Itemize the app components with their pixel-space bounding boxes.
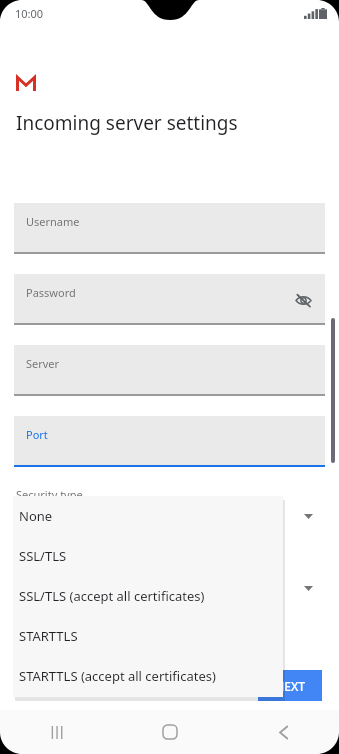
button[interactable]: Show password: [290, 287, 316, 313]
button[interactable]: Open dropdown: [300, 582, 316, 594]
button[interactable]: Open dropdown: [300, 510, 316, 522]
staticText: NEXT: [275, 678, 306, 694]
button[interactable]: Back: [261, 710, 305, 754]
button[interactable]: STARTTLS: [13, 616, 283, 656]
staticText: SSL/TLS (accept all certificates): [19, 587, 205, 605]
button[interactable]: Server: [14, 345, 325, 396]
button[interactable]: Username: [14, 203, 325, 254]
button[interactable]: Password: [14, 274, 325, 325]
button[interactable]: Port: [14, 416, 325, 467]
staticText: STARTTLS: [19, 627, 78, 645]
button[interactable]: Recent apps: [35, 710, 79, 754]
staticText: Port: [26, 427, 48, 442]
staticText: SSL/TLS: [19, 547, 67, 565]
staticText: STARTTLS (accept all certificates): [19, 667, 216, 685]
staticText: Security type: [16, 487, 83, 502]
staticText: Server: [26, 356, 60, 371]
staticText: Password: [26, 285, 76, 300]
button[interactable]: NEXT: [258, 670, 322, 701]
staticText: 10:00: [15, 6, 44, 21]
staticText: Incoming server settings: [16, 110, 238, 136]
button[interactable]: STARTTLS (accept all certificates): [13, 656, 283, 696]
button[interactable]: SSL/TLS: [13, 536, 283, 576]
staticText: None: [19, 507, 53, 525]
staticText: Username: [26, 214, 80, 229]
button[interactable]: Home: [148, 710, 192, 754]
button[interactable]: SSL/TLS (accept all certificates): [13, 576, 283, 616]
button[interactable]: None: [13, 496, 283, 536]
